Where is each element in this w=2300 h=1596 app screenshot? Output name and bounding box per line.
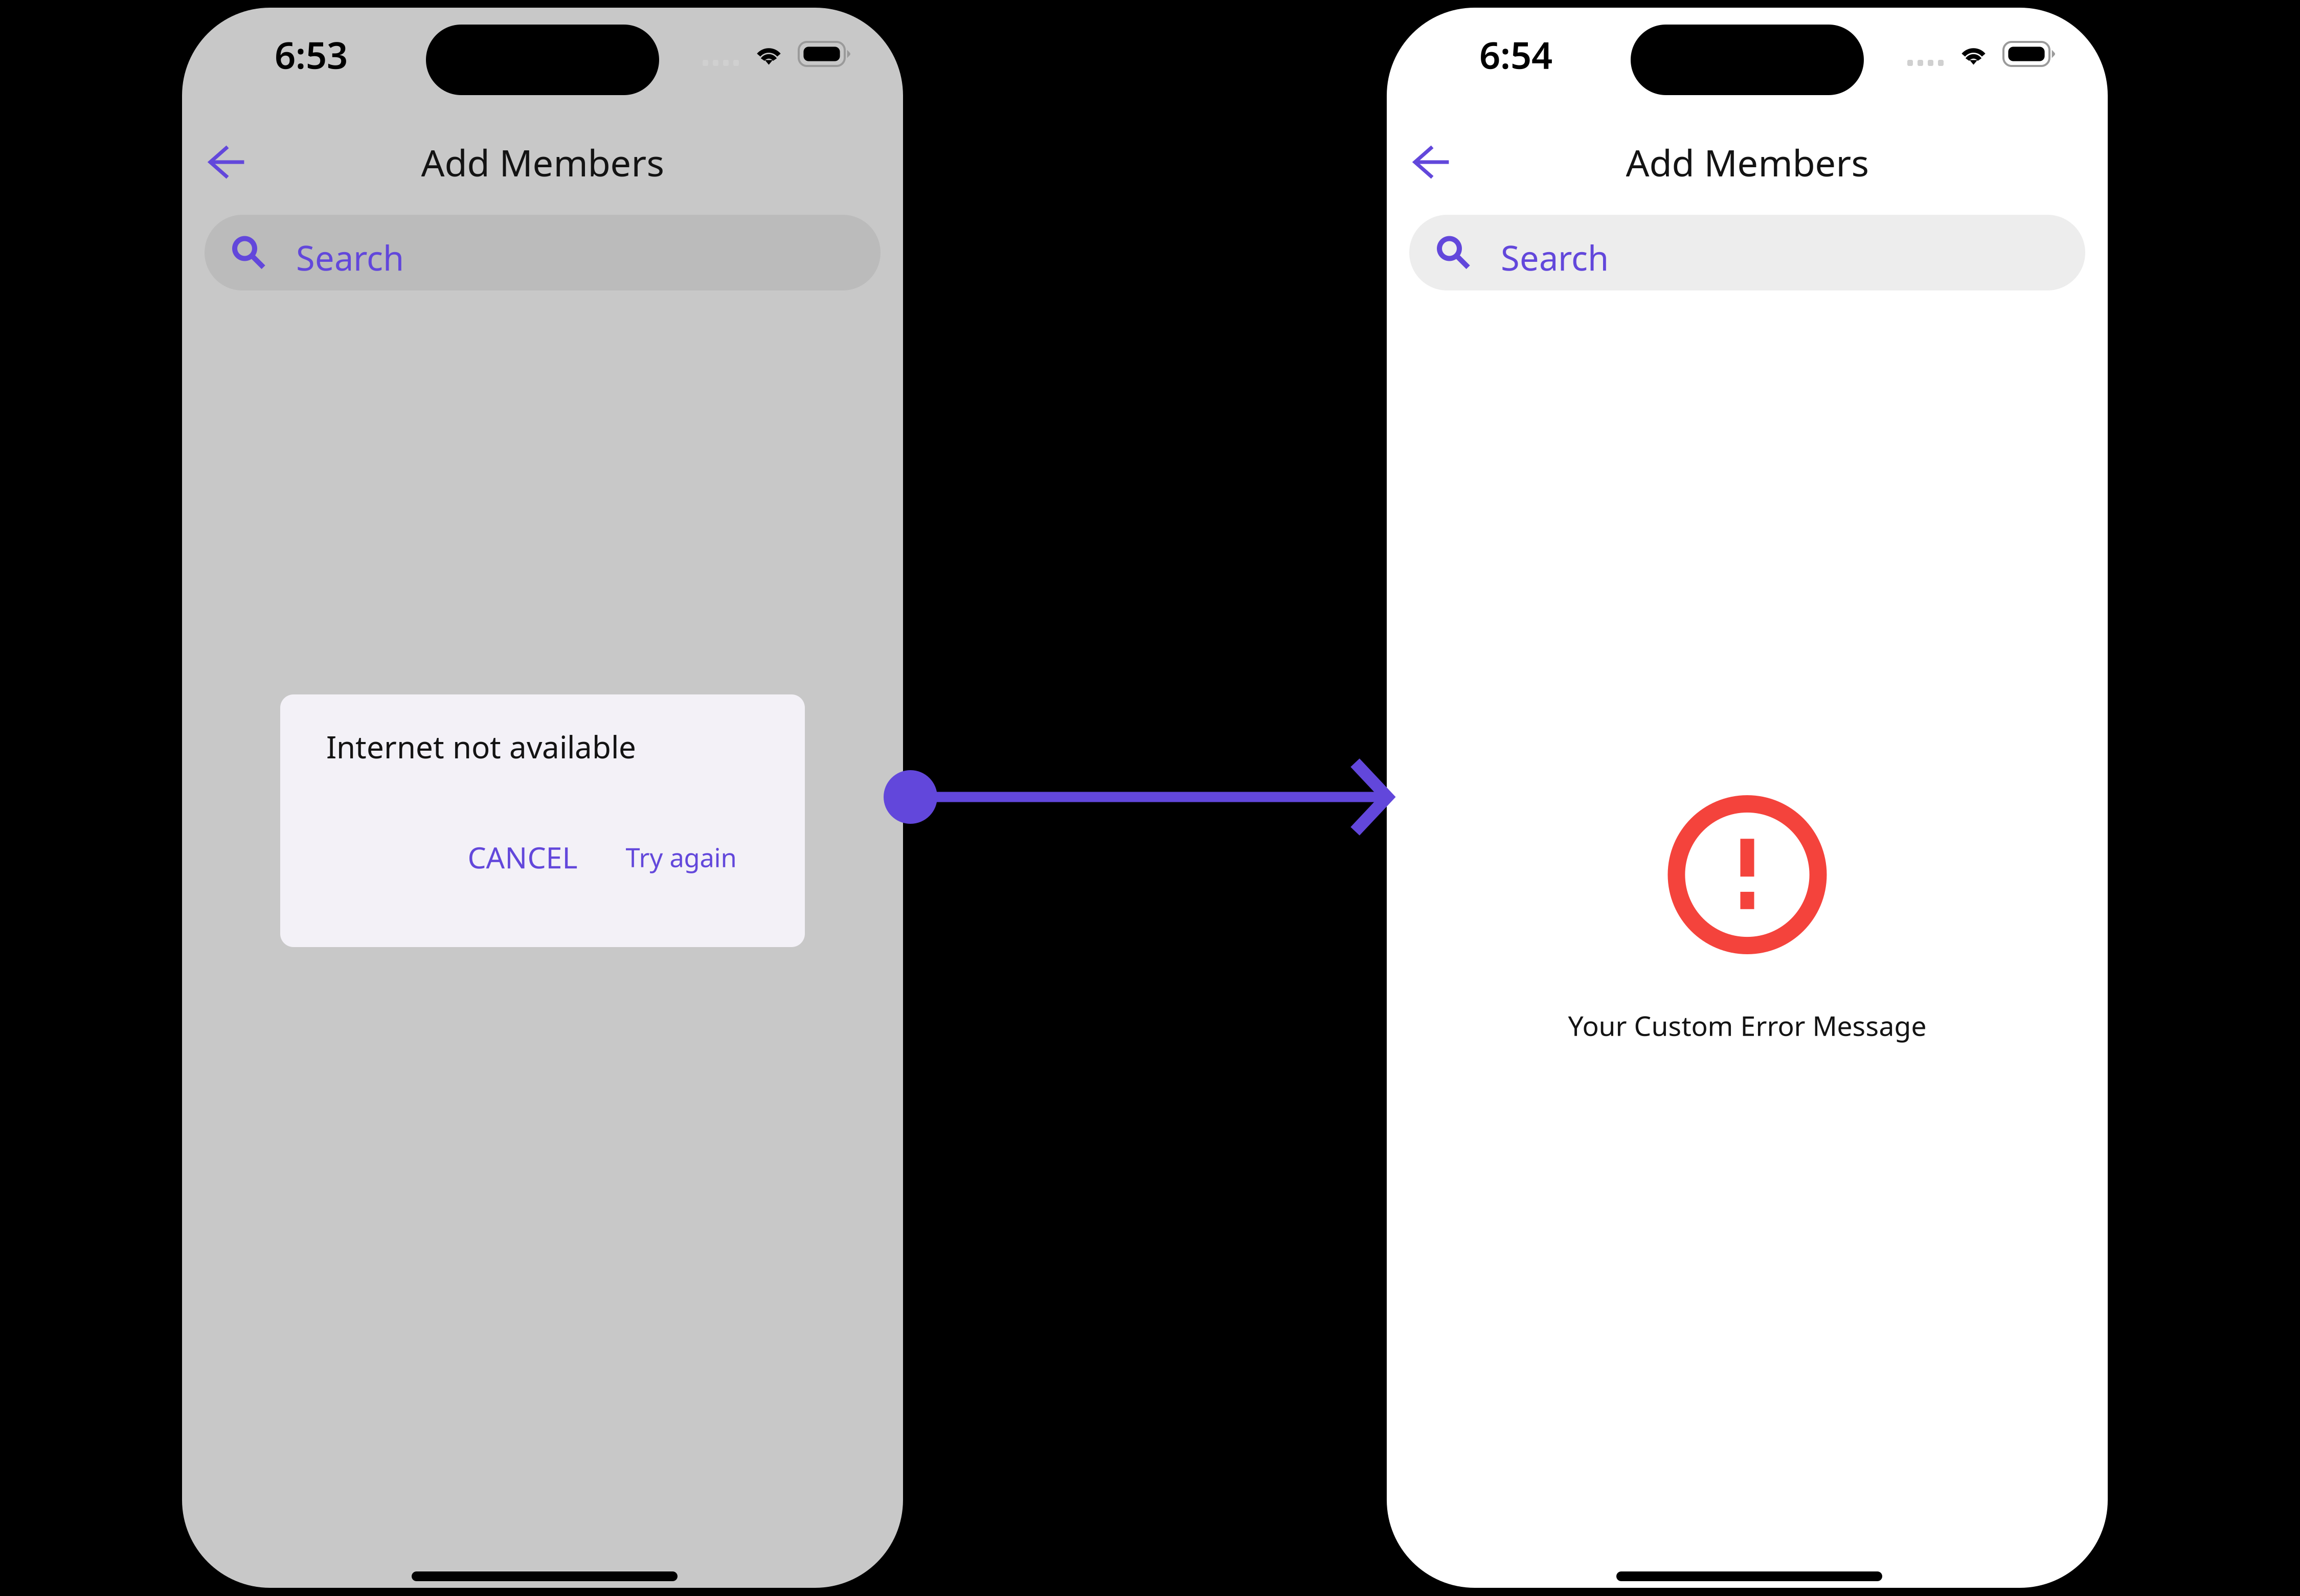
button[interactable]: Search bbox=[205, 215, 881, 290]
button[interactable]: Search bbox=[1409, 215, 2085, 290]
staticText: Try again bbox=[626, 840, 737, 874]
staticText: Add Members bbox=[1626, 138, 1869, 187]
button[interactable]: Back bbox=[1396, 134, 1468, 190]
button[interactable]: CANCEL bbox=[464, 834, 581, 881]
staticText: 6:54 bbox=[1479, 30, 1552, 79]
staticText: Add Members bbox=[421, 138, 664, 187]
staticText: CANCEL bbox=[468, 838, 578, 876]
staticText: Your Custom Error Message bbox=[1568, 1007, 1926, 1043]
staticText: Search bbox=[1501, 235, 1609, 280]
button[interactable]: Try again bbox=[623, 834, 739, 881]
button[interactable]: Back bbox=[191, 134, 263, 190]
staticText: Search bbox=[296, 235, 404, 280]
staticText: 6:53 bbox=[275, 30, 348, 79]
staticText: Internet not available bbox=[326, 726, 636, 767]
